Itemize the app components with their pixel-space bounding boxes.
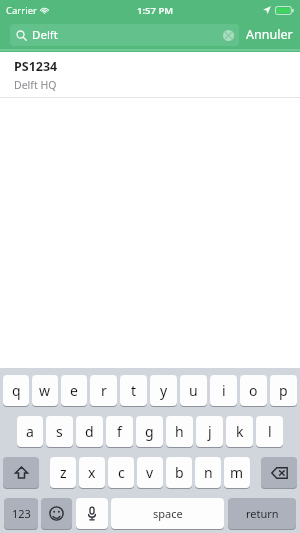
staticText: i xyxy=(222,381,226,400)
button[interactable]: o xyxy=(240,374,267,407)
button[interactable]: c xyxy=(108,456,134,489)
staticText: return xyxy=(246,506,279,521)
button[interactable]: Annuler xyxy=(239,20,300,49)
staticText: f xyxy=(117,422,122,441)
staticText: w xyxy=(39,381,51,400)
staticText: b xyxy=(175,463,184,482)
button[interactable]: e xyxy=(61,374,87,407)
staticText: Delft HQ xyxy=(14,78,57,92)
button[interactable]: x xyxy=(79,456,105,489)
button[interactable]: Clear search text xyxy=(219,26,237,44)
button[interactable]: f xyxy=(106,415,133,448)
button[interactable]: Backspace xyxy=(261,456,297,489)
staticText: z xyxy=(60,463,67,482)
staticText: p xyxy=(279,381,288,400)
staticText: x xyxy=(88,463,96,482)
staticText: q xyxy=(12,381,21,400)
button[interactable]: Dictate xyxy=(76,497,108,530)
staticText: m xyxy=(230,463,244,482)
staticText: o xyxy=(249,381,258,400)
staticText: a xyxy=(26,422,34,441)
staticText: y xyxy=(160,381,168,400)
staticText: v xyxy=(146,463,154,482)
button[interactable]: y xyxy=(150,374,177,407)
staticText: c xyxy=(118,463,125,482)
staticText: g xyxy=(145,422,154,441)
staticText: s xyxy=(56,422,63,441)
staticText: space xyxy=(153,506,183,521)
button[interactable]: PS1234 xyxy=(0,52,300,98)
button[interactable]: Emoji keyboard xyxy=(41,497,72,530)
button[interactable]: Shift xyxy=(3,456,39,489)
button[interactable]: p xyxy=(270,374,297,407)
button[interactable]: return xyxy=(228,497,296,530)
staticText: 1:57 PM xyxy=(137,4,174,17)
button[interactable]: z xyxy=(50,456,76,489)
staticText: e xyxy=(70,381,78,400)
staticText: Delft xyxy=(32,27,219,43)
button[interactable]: t xyxy=(120,374,147,407)
button[interactable]: q xyxy=(3,374,29,407)
staticText: l xyxy=(268,422,272,441)
button[interactable]: r xyxy=(90,374,117,407)
staticText: r xyxy=(101,381,107,400)
button[interactable]: u xyxy=(180,374,207,407)
staticText: 123 xyxy=(12,506,31,521)
button[interactable]: j xyxy=(196,415,223,448)
button[interactable]: m xyxy=(224,456,250,489)
staticText: PS1234 xyxy=(14,58,58,75)
button[interactable]: space xyxy=(111,497,224,530)
staticText: Annuler xyxy=(246,26,293,43)
button[interactable]: g xyxy=(136,415,163,448)
button[interactable]: a xyxy=(17,415,43,448)
button[interactable]: l xyxy=(256,415,283,448)
button[interactable]: 123 xyxy=(4,497,38,530)
button[interactable]: w xyxy=(32,374,58,407)
staticText: t xyxy=(131,381,137,400)
button[interactable]: k xyxy=(226,415,253,448)
staticText: d xyxy=(85,422,94,441)
staticText: Carrier xyxy=(6,4,37,17)
button[interactable]: v xyxy=(137,456,163,489)
button[interactable]: i xyxy=(210,374,237,407)
button[interactable]: h xyxy=(166,415,193,448)
button[interactable]: s xyxy=(46,415,73,448)
staticText: k xyxy=(236,422,244,441)
staticText: u xyxy=(189,381,198,400)
button[interactable]: b xyxy=(166,456,192,489)
staticText: j xyxy=(208,422,212,441)
staticText: n xyxy=(204,463,213,482)
button[interactable]: n xyxy=(195,456,221,489)
button[interactable]: Delft xyxy=(10,24,239,46)
button[interactable]: d xyxy=(76,415,103,448)
staticText: h xyxy=(175,422,184,441)
